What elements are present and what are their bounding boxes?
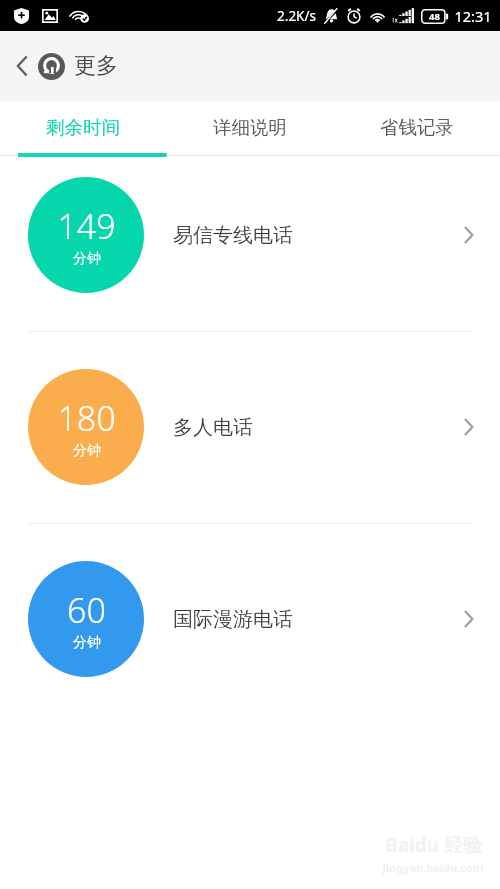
staticText: 180 xyxy=(57,395,116,441)
staticText: 剩余时间 xyxy=(46,116,120,139)
button[interactable]: 剩余时间 xyxy=(0,101,166,157)
staticText: 149 xyxy=(57,203,116,249)
staticText: 2.2K/s xyxy=(277,7,316,25)
staticText: 分钟 xyxy=(73,442,101,460)
staticText: 分钟 xyxy=(73,250,101,268)
button[interactable]: 60 xyxy=(0,541,500,697)
staticText: 省钱记录 xyxy=(380,116,454,139)
button[interactable]: Back xyxy=(12,46,122,86)
staticText: 国际漫游电话 xyxy=(173,607,293,632)
staticText: 详细说明 xyxy=(213,116,287,139)
staticText: 多人电话 xyxy=(173,415,253,440)
staticText: 易信专线电话 xyxy=(173,223,293,248)
staticText: 48 xyxy=(429,10,440,23)
staticText: 12:31 xyxy=(454,6,492,26)
button[interactable]: 详细说明 xyxy=(166,101,333,157)
button[interactable]: 省钱记录 xyxy=(333,101,500,157)
staticText: jingyan.baidu.com xyxy=(382,860,484,875)
staticText: 分钟 xyxy=(73,634,101,652)
button[interactable]: 180 xyxy=(0,349,500,505)
staticText: 60 xyxy=(67,587,106,633)
button[interactable]: 149 xyxy=(0,157,500,313)
staticText: Baidu 经验 xyxy=(385,832,482,858)
staticText: 更多 xyxy=(74,52,118,80)
